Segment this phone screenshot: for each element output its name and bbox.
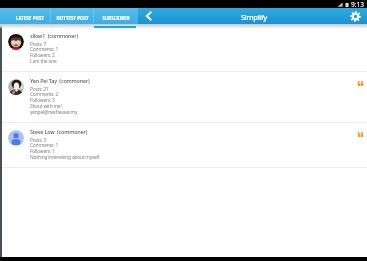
button[interactable]: SUBSCRIBER bbox=[94, 8, 138, 24]
staticText: sllow1 (commoner) bbox=[30, 32, 78, 39]
staticText: HOTTEST POST bbox=[56, 15, 89, 21]
staticText: Simplify bbox=[241, 12, 267, 22]
staticText: Posts: 21 Comments: 2 Followers: 3 Shout… bbox=[30, 86, 78, 116]
button[interactable]: Message bbox=[358, 81, 363, 86]
staticText: Yen Pei Tay (commoner) bbox=[30, 77, 90, 84]
button[interactable]: LATEST POST bbox=[9, 8, 50, 24]
button[interactable]: Steve Low (commoner) bbox=[0, 123, 367, 168]
button[interactable]: HOTTEST POST bbox=[51, 8, 93, 24]
staticText: Posts: 7 Comments: 1 Followers: 2 I am t… bbox=[30, 41, 59, 65]
staticText: Steve Low (commoner) bbox=[30, 128, 88, 135]
button[interactable]: sllow1 (commoner) bbox=[0, 27, 367, 72]
button[interactable]: Yen Pei Tay (commoner) bbox=[0, 72, 367, 123]
button[interactable]: Message bbox=[358, 132, 363, 137]
staticText: Posts: 3 Comments: 1 Followers: 1 Nothin… bbox=[30, 137, 100, 161]
button[interactable]: Settings bbox=[350, 11, 361, 22]
staticText: SUBSCRIBER bbox=[102, 15, 130, 21]
staticText: 9:13 bbox=[351, 0, 364, 8]
button[interactable]: Back bbox=[142, 9, 156, 23]
staticText: LATEST POST bbox=[16, 15, 44, 21]
